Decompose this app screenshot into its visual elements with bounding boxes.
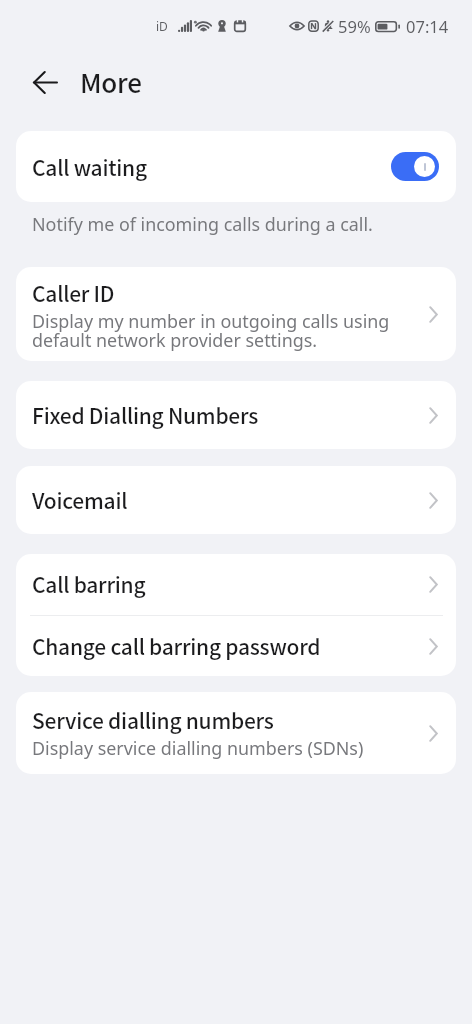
staticText: Display my number in outgoing calls usin… <box>32 313 390 351</box>
button[interactable]: Call waiting <box>16 131 456 202</box>
button[interactable]: Voicemail <box>16 466 456 534</box>
button[interactable]: Service dialling numbers <box>16 692 456 774</box>
button[interactable]: Call waiting toggle <box>391 152 439 181</box>
staticText: Notify me of incoming calls during a cal… <box>32 212 373 236</box>
staticText: Voicemail <box>32 487 128 514</box>
staticText: 59% <box>338 15 371 37</box>
staticText: Call barring <box>32 571 146 598</box>
button[interactable]: Caller ID <box>16 267 456 361</box>
staticText: More <box>80 63 142 101</box>
button[interactable]: Change call barring password <box>16 616 456 676</box>
staticText: Caller ID <box>32 284 115 306</box>
staticText: Display service dialling numbers (SDNs) <box>32 740 364 759</box>
staticText: iD <box>156 18 168 34</box>
button[interactable]: Fixed Dialling Numbers <box>16 381 456 449</box>
staticText: 07:14 <box>406 15 449 37</box>
staticText: Fixed Dialling Numbers <box>32 402 259 429</box>
button[interactable]: Back <box>23 60 67 104</box>
button[interactable]: Call barring <box>16 554 456 615</box>
staticText: Change call barring password <box>32 633 321 660</box>
staticText: Call waiting <box>32 152 391 182</box>
staticText: Service dialling numbers <box>32 711 274 733</box>
